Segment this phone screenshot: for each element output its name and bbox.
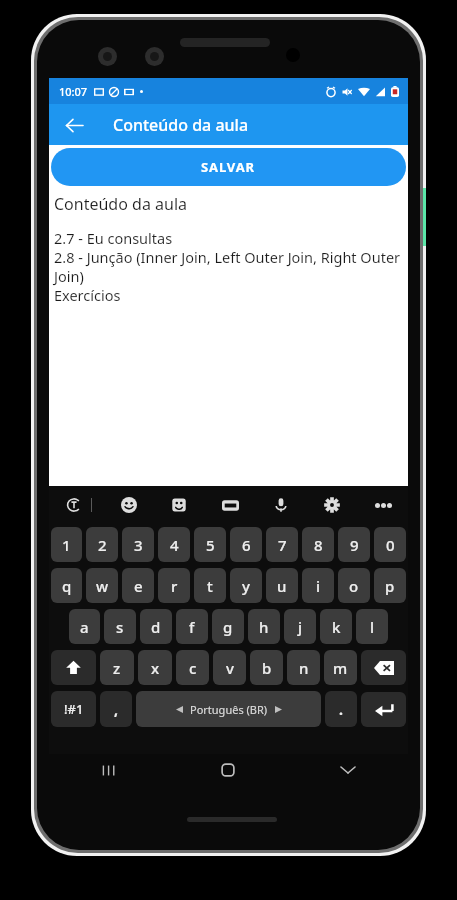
staticText: a bbox=[80, 617, 89, 637]
button[interactable]: k bbox=[320, 609, 352, 644]
button[interactable]: v bbox=[213, 650, 246, 685]
staticText: 1 bbox=[62, 535, 71, 555]
button[interactable]: Figurinhas bbox=[166, 492, 192, 518]
button[interactable]: j bbox=[284, 609, 316, 644]
button[interactable]: c bbox=[176, 650, 209, 685]
staticText: l bbox=[370, 617, 375, 637]
staticText: Conteúdo da aula bbox=[113, 114, 249, 136]
staticText: f bbox=[189, 617, 195, 637]
button[interactable]: s bbox=[104, 609, 136, 644]
staticText: !#1 bbox=[64, 700, 84, 718]
staticText: i bbox=[316, 576, 321, 596]
button[interactable]: 7 bbox=[266, 527, 298, 562]
staticText: g bbox=[223, 617, 233, 637]
button[interactable]: . bbox=[325, 691, 357, 727]
staticText: 8 bbox=[314, 535, 323, 555]
button[interactable]: x bbox=[138, 650, 172, 685]
staticText: 6 bbox=[242, 535, 251, 555]
button[interactable]: d bbox=[140, 609, 172, 644]
staticText: 0 bbox=[386, 535, 395, 555]
button[interactable]: Configurações bbox=[319, 492, 345, 518]
staticText: d bbox=[151, 617, 161, 637]
button[interactable]: 3 bbox=[122, 527, 154, 562]
staticText: n bbox=[299, 658, 309, 678]
button[interactable]: Português (BR) bbox=[136, 691, 321, 727]
button[interactable]: r bbox=[158, 568, 190, 603]
staticText: 4 bbox=[170, 535, 179, 555]
button[interactable]: n bbox=[287, 650, 320, 685]
staticText: s bbox=[116, 617, 124, 637]
button[interactable]: b bbox=[250, 650, 283, 685]
staticText: . bbox=[339, 700, 343, 719]
staticText: Conteúdo da aula bbox=[54, 193, 187, 215]
staticText: w bbox=[96, 576, 109, 596]
button[interactable]: Voz bbox=[268, 492, 294, 518]
button[interactable]: GIF bbox=[217, 492, 243, 518]
staticText: 10:07 bbox=[59, 84, 88, 99]
staticText: j bbox=[298, 617, 303, 637]
staticText: k bbox=[332, 617, 341, 637]
button[interactable]: l bbox=[356, 609, 388, 644]
button[interactable]: Shift bbox=[51, 650, 96, 685]
button[interactable]: w bbox=[86, 568, 118, 603]
staticText: Português (BR) bbox=[190, 702, 268, 717]
staticText: t bbox=[207, 576, 213, 596]
button[interactable]: Fechar teclado bbox=[288, 754, 408, 786]
button[interactable]: z bbox=[100, 650, 134, 685]
staticText: 3 bbox=[134, 535, 143, 555]
staticText: x bbox=[151, 658, 160, 678]
button[interactable]: g bbox=[212, 609, 244, 644]
button[interactable]: , bbox=[100, 691, 132, 727]
button[interactable]: 8 bbox=[302, 527, 334, 562]
staticText: o bbox=[349, 576, 359, 596]
staticText: h bbox=[259, 617, 269, 637]
staticText: u bbox=[277, 576, 287, 596]
staticText: r bbox=[171, 576, 178, 596]
staticText: , bbox=[114, 700, 118, 719]
staticText: 9 bbox=[350, 535, 359, 555]
button[interactable]: f bbox=[176, 609, 208, 644]
button[interactable]: Voltar bbox=[57, 108, 91, 142]
staticText: SALVAR bbox=[201, 158, 256, 176]
button[interactable]: Início bbox=[168, 754, 288, 786]
button[interactable]: y bbox=[230, 568, 262, 603]
staticText: p bbox=[385, 576, 395, 596]
button[interactable]: 1 bbox=[51, 527, 82, 562]
staticText: y bbox=[242, 576, 250, 596]
staticText: e bbox=[134, 576, 143, 596]
button[interactable]: i bbox=[302, 568, 334, 603]
button[interactable]: SALVAR bbox=[51, 148, 406, 186]
button[interactable]: 4 bbox=[158, 527, 190, 562]
staticText: m bbox=[333, 658, 348, 678]
button[interactable]: Emoji bbox=[116, 492, 142, 518]
staticText: v bbox=[226, 658, 234, 678]
button[interactable]: 2 bbox=[86, 527, 118, 562]
button[interactable]: Apagar bbox=[361, 650, 406, 685]
button[interactable]: 6 bbox=[230, 527, 262, 562]
staticText: b bbox=[262, 658, 272, 678]
button[interactable]: 0 bbox=[374, 527, 406, 562]
staticText: 5 bbox=[206, 535, 215, 555]
staticText: c bbox=[189, 658, 197, 678]
button[interactable]: a bbox=[69, 609, 100, 644]
button[interactable]: p bbox=[374, 568, 406, 603]
staticText: 2 bbox=[98, 535, 107, 555]
button[interactable]: Traduzir bbox=[61, 492, 87, 518]
button[interactable]: t bbox=[194, 568, 226, 603]
staticText: 7 bbox=[278, 535, 287, 555]
staticText: q bbox=[62, 576, 72, 596]
button[interactable]: Recentes bbox=[49, 754, 168, 786]
button[interactable]: !#1 bbox=[51, 691, 96, 727]
button[interactable]: h bbox=[248, 609, 280, 644]
button[interactable]: e bbox=[122, 568, 154, 603]
button[interactable]: q bbox=[51, 568, 82, 603]
staticText: 2.7 - Eu consultas 2.8 - Junção (Inner J… bbox=[54, 228, 404, 305]
button[interactable]: Enter bbox=[361, 692, 406, 727]
button[interactable]: 9 bbox=[338, 527, 370, 562]
button[interactable]: 5 bbox=[194, 527, 226, 562]
button[interactable]: u bbox=[266, 568, 298, 603]
button[interactable]: Mais bbox=[370, 492, 396, 518]
button[interactable]: m bbox=[324, 650, 357, 685]
button[interactable]: o bbox=[338, 568, 370, 603]
staticText: z bbox=[113, 658, 121, 678]
